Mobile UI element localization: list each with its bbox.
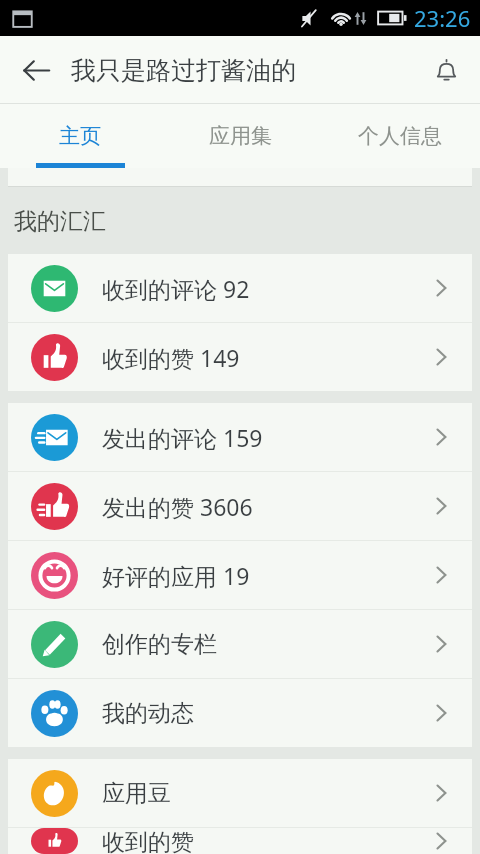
button[interactable]: 收到的评论 92: [8, 254, 472, 322]
button[interactable]: Notifications: [420, 44, 472, 96]
staticText: 主页: [59, 123, 101, 149]
button[interactable]: 个人信息: [320, 104, 480, 168]
staticText: 发出的评论 159: [102, 422, 430, 453]
staticText: 创作的专栏: [102, 630, 430, 659]
button[interactable]: 发出的赞 3606: [8, 472, 472, 540]
staticText: 发出的赞 3606: [102, 491, 430, 522]
button[interactable]: 我的动态: [8, 679, 472, 747]
button[interactable]: 应用豆: [8, 759, 472, 827]
staticText: 个人信息: [358, 123, 442, 149]
button[interactable]: 好评的应用 19: [8, 541, 472, 609]
staticText: 应用集: [209, 123, 272, 149]
staticText: 收到的赞 149: [102, 342, 430, 373]
button[interactable]: 收到的赞: [8, 828, 472, 854]
button[interactable]: 收到的赞 149: [8, 323, 472, 391]
staticText: 我只是路过打酱油的: [71, 55, 296, 86]
staticText: 23:26: [414, 3, 471, 33]
button[interactable]: 应用集: [160, 104, 320, 168]
staticText: 我的汇汇: [14, 207, 106, 236]
button[interactable]: 创作的专栏: [8, 610, 472, 678]
button[interactable]: Back: [10, 44, 62, 96]
button[interactable]: 主页: [0, 104, 160, 168]
staticText: 应用豆: [102, 779, 430, 808]
button[interactable]: 发出的评论 159: [8, 403, 472, 471]
staticText: 收到的赞: [102, 828, 430, 854]
staticText: 收到的评论 92: [102, 273, 430, 304]
staticText: 好评的应用 19: [102, 560, 430, 591]
staticText: 我的动态: [102, 699, 430, 728]
